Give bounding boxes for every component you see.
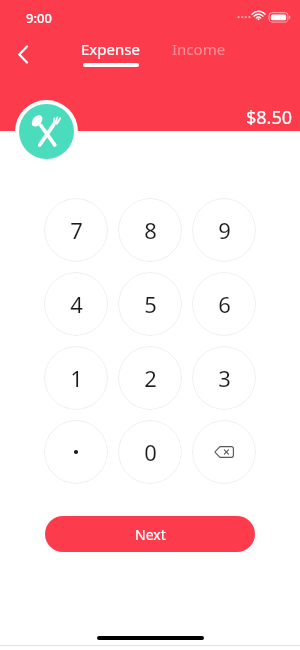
button[interactable] bbox=[44, 420, 108, 484]
button[interactable]: Category: Food bbox=[19, 104, 74, 159]
button[interactable]: Expense bbox=[73, 35, 148, 71]
staticText: 4 bbox=[70, 289, 83, 319]
button[interactable]: 3 bbox=[192, 346, 256, 410]
staticText: Income bbox=[172, 39, 226, 59]
staticText: 2 bbox=[144, 363, 157, 393]
button[interactable]: 7 bbox=[44, 198, 108, 262]
button[interactable]: 2 bbox=[118, 346, 182, 410]
staticText: 9:00 bbox=[26, 9, 52, 27]
staticText: 8 bbox=[144, 215, 157, 245]
button[interactable]: 4 bbox=[44, 272, 108, 336]
button[interactable]: Back bbox=[7, 38, 39, 70]
staticText: 6 bbox=[218, 289, 231, 319]
staticText: 1 bbox=[70, 363, 83, 393]
button[interactable]: 1 bbox=[44, 346, 108, 410]
button[interactable]: Backspace bbox=[192, 420, 256, 484]
staticText: 9 bbox=[218, 215, 231, 245]
staticText: 0 bbox=[144, 437, 157, 467]
staticText: Next bbox=[135, 525, 166, 544]
staticText: 5 bbox=[144, 289, 157, 319]
button[interactable]: 6 bbox=[192, 272, 256, 336]
staticText: 3 bbox=[218, 363, 231, 393]
button[interactable]: 9 bbox=[192, 198, 256, 262]
button[interactable]: 0 bbox=[118, 420, 182, 484]
staticText: 7 bbox=[70, 215, 83, 245]
button[interactable]: 5 bbox=[118, 272, 182, 336]
button[interactable]: Income bbox=[164, 35, 234, 63]
staticText: $8.50 bbox=[246, 105, 293, 130]
staticText: Expense bbox=[81, 39, 140, 59]
button[interactable]: Next bbox=[45, 516, 255, 552]
other: Backspace bbox=[214, 446, 234, 458]
button[interactable]: 8 bbox=[118, 198, 182, 262]
